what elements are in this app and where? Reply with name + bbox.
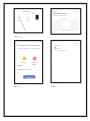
button[interactable]: Choose option screen mockup xyxy=(14,40,43,84)
button[interactable]: Empty notes screen mockup xyxy=(51,40,81,83)
button[interactable]: Product detail screen mockup xyxy=(51,8,81,35)
button[interactable]: Shop list screen mockup xyxy=(14,8,43,33)
